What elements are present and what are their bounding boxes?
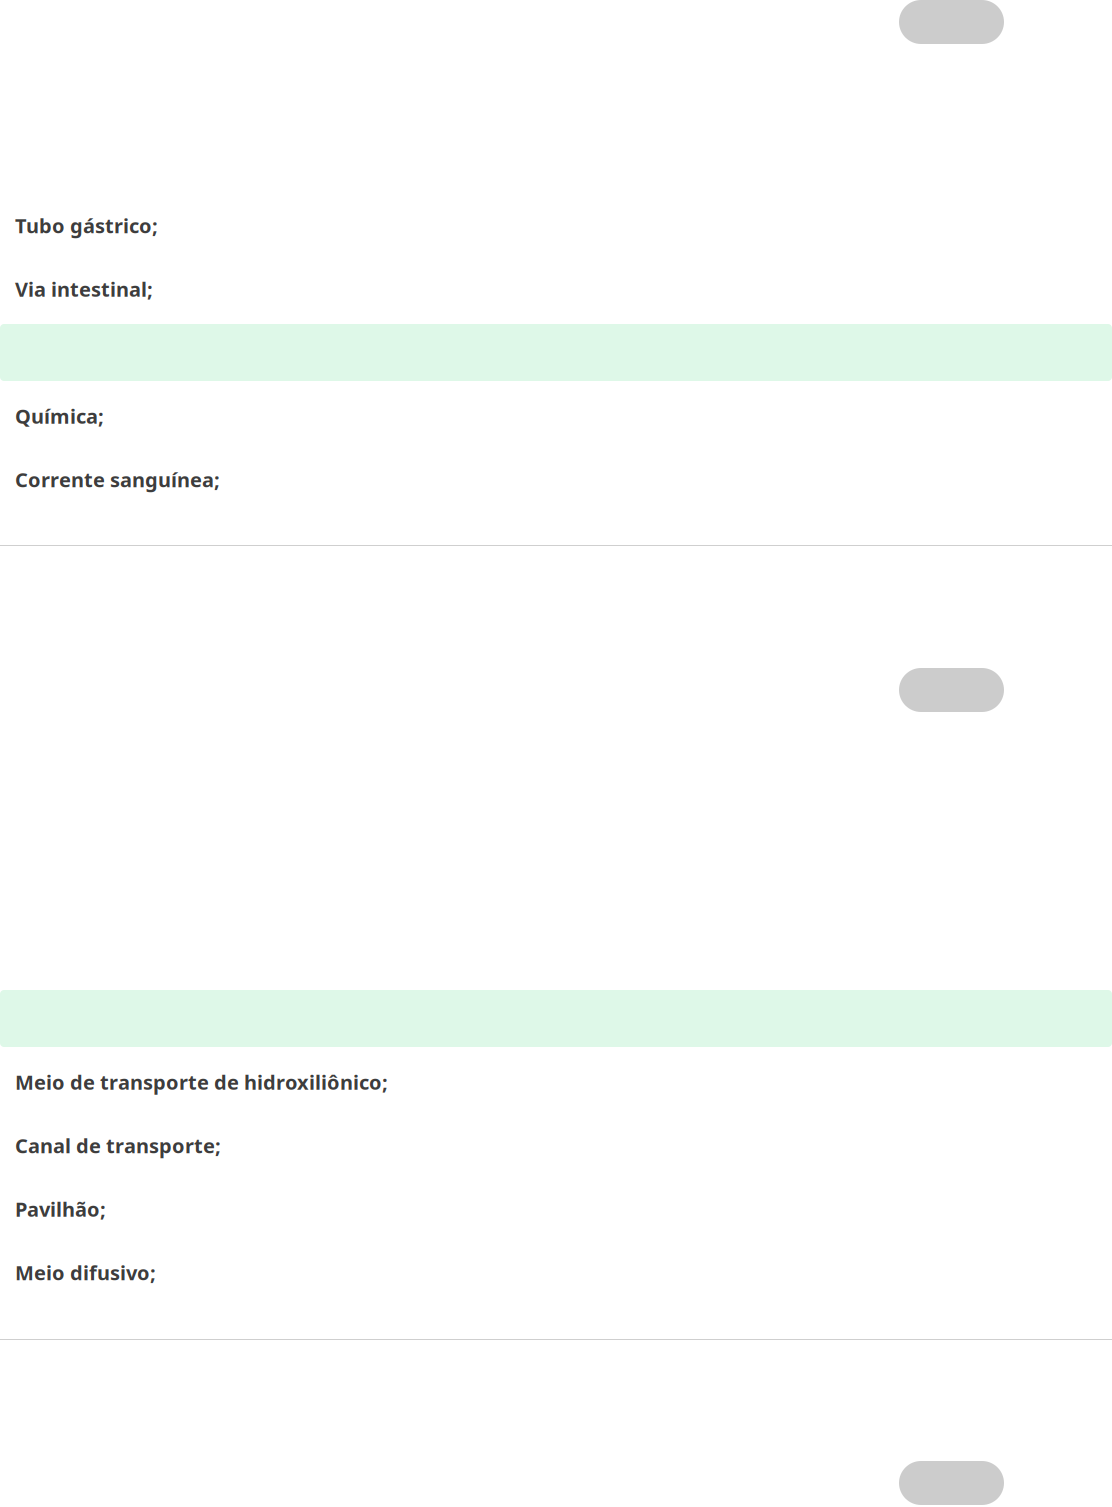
staticText: Via intestinal; xyxy=(15,276,153,302)
button[interactable]: Química; xyxy=(0,387,1112,444)
button[interactable]: Via intestinal; xyxy=(0,260,1112,317)
button[interactable]: Opções da questão xyxy=(899,0,1004,44)
staticText: Canal de transporte; xyxy=(15,1132,221,1159)
button[interactable]: Corrente sanguínea; xyxy=(0,451,1112,508)
button[interactable]: Tubo gástrico; xyxy=(0,197,1112,254)
staticText: Pavilhão; xyxy=(15,1196,106,1222)
staticText: Corrente sanguínea; xyxy=(15,466,220,493)
staticText: Química; xyxy=(15,403,104,429)
button[interactable]: Meio de transporte de hidroxiliônico; xyxy=(0,1053,1112,1110)
button[interactable]: Canal de transporte; xyxy=(0,1117,1112,1174)
staticText: Meio de transporte de hidroxiliônico; xyxy=(15,1069,388,1095)
staticText: Meio difusivo; xyxy=(15,1259,156,1286)
button[interactable]: Pavilhão; xyxy=(0,1180,1112,1237)
button[interactable]: Meio difusivo; xyxy=(0,1244,1112,1301)
button[interactable]: Opções da questão xyxy=(899,1461,1004,1505)
staticText: Tubo gástrico; xyxy=(15,212,158,239)
button[interactable]: Opções da questão xyxy=(899,668,1004,712)
